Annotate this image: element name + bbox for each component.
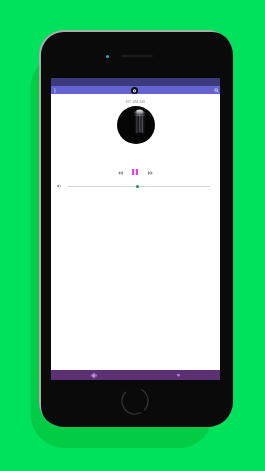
- button[interactable]: Menu: [52, 86, 58, 94]
- button[interactable]: Now playing: [131, 87, 138, 94]
- staticText: KIT: AM-340: [51, 99, 220, 104]
- button[interactable]: Search: [213, 86, 220, 94]
- button[interactable]: Pause: [129, 166, 140, 178]
- button[interactable]: Volume: [68, 183, 210, 190]
- button[interactable]: Favourites: [168, 370, 189, 380]
- button[interactable]: Next: [145, 167, 156, 179]
- button[interactable]: Explore: [83, 370, 104, 380]
- button[interactable]: Album art: [117, 106, 155, 144]
- button[interactable]: Previous: [115, 167, 126, 179]
